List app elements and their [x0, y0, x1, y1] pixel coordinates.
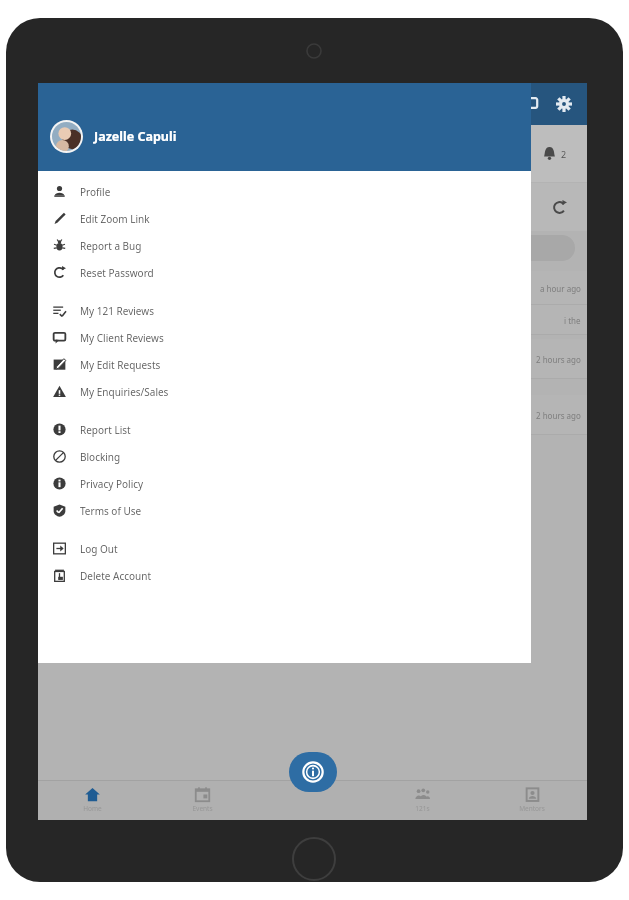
- staticText: a hour ago: [540, 283, 581, 294]
- button[interactable]: Edit Zoom Link: [38, 205, 531, 232]
- button[interactable]: Reset Password: [38, 259, 531, 286]
- button[interactable]: Log Out: [38, 535, 531, 562]
- button[interactable]: Delete Account: [38, 562, 531, 589]
- button[interactable]: Events: [147, 780, 257, 820]
- button[interactable]: Jazelle Capuli: [50, 120, 177, 153]
- staticText: Reset Password: [80, 266, 154, 280]
- button[interactable]: 121s: [367, 780, 477, 820]
- button[interactable]: Report List: [38, 416, 531, 443]
- staticText: Report a Bug: [80, 239, 142, 253]
- button[interactable]: My Client Reviews: [38, 324, 531, 351]
- staticText: Privacy Policy: [80, 477, 144, 491]
- staticText: Home: [83, 804, 102, 813]
- button[interactable]: Home: [38, 780, 147, 820]
- button[interactable]: My Enquiries/Sales: [38, 378, 531, 405]
- staticText: Log Out: [80, 542, 118, 556]
- staticText: 2: [561, 148, 567, 160]
- staticText: 121s: [415, 804, 430, 813]
- staticText: My Enquiries/Sales: [80, 385, 169, 399]
- button[interactable]: Profile: [38, 178, 531, 205]
- button[interactable]: Messages: [515, 89, 545, 119]
- button[interactable]: Info: [289, 752, 337, 792]
- button[interactable]: Blocking: [38, 443, 531, 470]
- staticText: Blocking: [80, 450, 121, 464]
- button[interactable]: Terms of Use: [38, 497, 531, 524]
- staticText: 2 hours ago: [536, 354, 581, 365]
- staticText: My 121 Reviews: [80, 304, 154, 318]
- staticText: Delete Account: [80, 569, 152, 583]
- button[interactable]: My 121 Reviews: [38, 297, 531, 324]
- button[interactable]: Privacy Policy: [38, 470, 531, 497]
- staticText: Jazelle Capuli: [94, 128, 177, 145]
- staticText: i the: [564, 315, 581, 326]
- staticText: My Client Reviews: [80, 331, 164, 345]
- button[interactable]: Report a Bug: [38, 232, 531, 259]
- button[interactable]: Mentors: [477, 780, 587, 820]
- staticText: Events: [192, 804, 213, 813]
- staticText: Mentors: [519, 804, 545, 813]
- staticText: Terms of Use: [80, 504, 142, 518]
- button[interactable]: My Edit Requests: [38, 351, 531, 378]
- button[interactable]: Settings: [549, 89, 579, 119]
- staticText: Profile: [80, 185, 111, 199]
- staticText: Report List: [80, 423, 131, 437]
- staticText: 2 hours ago: [536, 410, 581, 421]
- staticText: Edit Zoom Link: [80, 212, 150, 226]
- staticText: My Edit Requests: [80, 358, 161, 372]
